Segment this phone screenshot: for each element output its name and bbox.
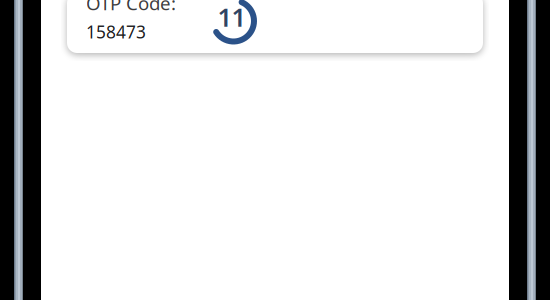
staticText: 11 [217, 0, 245, 34]
staticText: 158473 [86, 20, 146, 43]
button[interactable]: OTP Code: [67, 0, 483, 53]
staticText: OTP Code: [86, 0, 176, 15]
